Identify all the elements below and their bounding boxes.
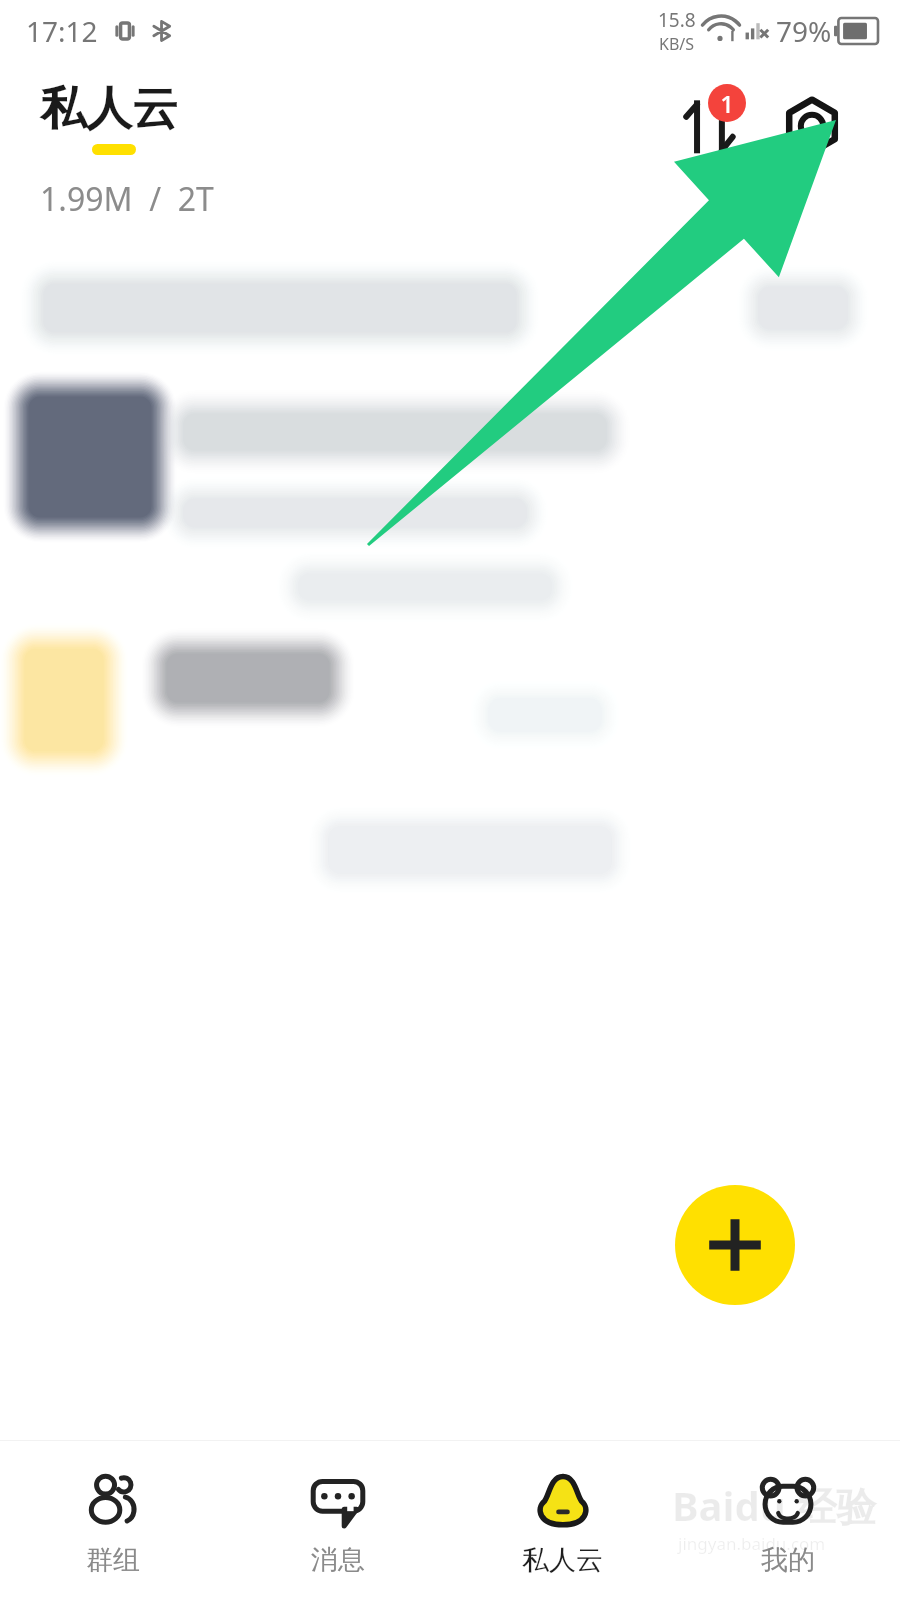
staticText: Baidu 经验 <box>672 1478 877 1533</box>
staticText: 私人云 <box>522 1543 603 1577</box>
staticText: 1.99M / 2T <box>40 177 214 221</box>
button[interactable]: Add <box>675 1185 795 1305</box>
staticText: 群组 <box>86 1543 140 1577</box>
staticText: 我的 <box>761 1543 815 1577</box>
staticText: 79% <box>776 12 832 50</box>
staticText: 消息 <box>311 1543 365 1577</box>
staticText: 17:12 <box>26 12 98 50</box>
staticText: KB/S <box>659 33 695 55</box>
button[interactable]: Camera <box>770 84 854 168</box>
button[interactable]: 群组 <box>0 1455 225 1587</box>
staticText: 私人云 <box>40 80 178 138</box>
staticText: 1 <box>720 87 734 120</box>
button[interactable]: 我的 <box>675 1455 900 1587</box>
staticText: 15.8 <box>658 7 696 33</box>
button[interactable]: 消息 <box>225 1455 450 1587</box>
button[interactable]: 私人云 <box>450 1455 675 1587</box>
staticText: jingyan.baidu.com <box>678 1532 826 1555</box>
button[interactable]: Transfers <box>668 84 752 168</box>
